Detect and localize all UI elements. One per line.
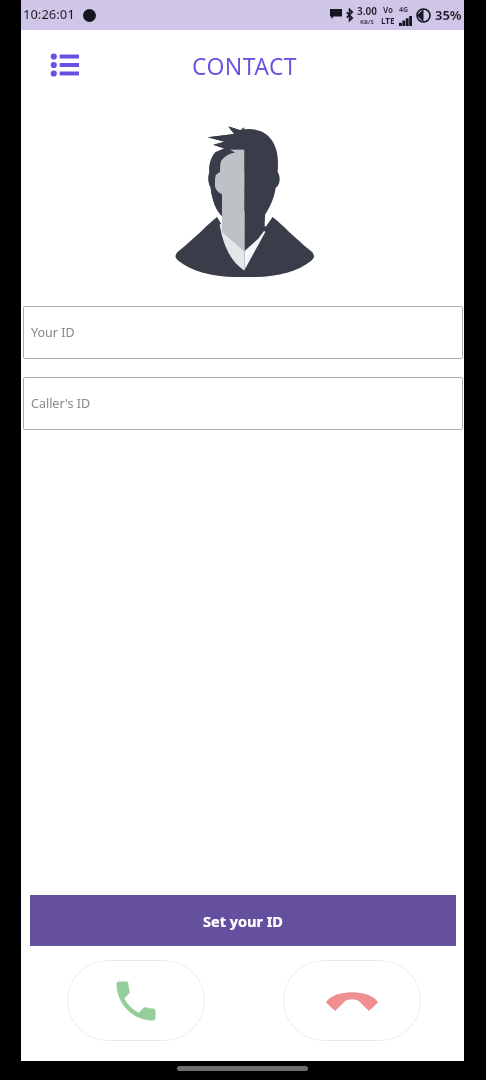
button[interactable]: Set your ID [30,895,456,946]
staticText: KB/S [360,18,374,26]
staticText: 4G [399,5,409,15]
button[interactable]: Caller's ID [23,377,463,430]
button[interactable]: Menu [42,42,88,88]
staticText: 3.00 [357,4,377,18]
button[interactable]: End call [283,960,421,1041]
staticText: Vo [383,4,394,15]
staticText: Your ID [31,324,75,341]
staticText: Set your ID [203,911,283,931]
staticText: CONTACT [192,50,298,81]
button[interactable]: Call [67,960,205,1041]
staticText: LTE [381,15,395,26]
staticText: Caller's ID [31,395,91,412]
button[interactable]: Your ID [23,306,463,359]
staticText: 10:26:01 [23,5,75,23]
staticText: 35% [435,6,462,24]
